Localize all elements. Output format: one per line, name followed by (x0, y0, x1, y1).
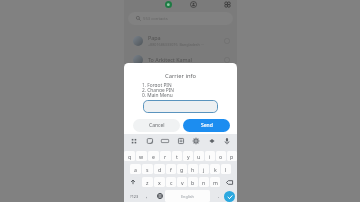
staticText: u (197, 153, 201, 160)
staticText: English (181, 194, 194, 199)
button[interactable]: Send (183, 119, 230, 132)
button[interactable]: Papa (124, 31, 237, 50)
button[interactable]: Apps (130, 137, 138, 145)
button[interactable]: Theme (208, 137, 216, 145)
button[interactable]: x (154, 177, 165, 187)
button[interactable]: g (177, 164, 187, 174)
button[interactable]: To Arkitect Kamal (124, 50, 237, 69)
button[interactable]: h (188, 164, 198, 174)
staticText: v (181, 179, 184, 186)
button[interactable]: r (160, 151, 171, 161)
button[interactable]: Settings (192, 137, 200, 145)
staticText: o (219, 153, 223, 160)
staticText: i (209, 153, 211, 160)
staticText: b (191, 179, 195, 186)
staticText: 0. Main Menu (142, 92, 173, 97)
button[interactable]: Voice input (223, 137, 231, 145)
button[interactable]: Enter (224, 191, 235, 202)
staticText: Send (201, 122, 213, 129)
button[interactable]: p (227, 151, 237, 161)
button[interactable]: 553 contacts (128, 12, 233, 25)
button[interactable]: English (165, 190, 210, 202)
button[interactable]: n (199, 177, 209, 187)
staticText: g (180, 166, 184, 173)
button[interactable]: y (183, 151, 193, 161)
staticText: q (128, 153, 132, 160)
button[interactable]: j (199, 164, 209, 174)
staticText: 553 contacts (143, 16, 168, 22)
staticText: Cancel (149, 122, 165, 129)
button[interactable]: d (154, 164, 165, 174)
staticText: l (225, 166, 227, 173)
button[interactable]: l (221, 164, 231, 174)
button[interactable]: Stickers (146, 137, 154, 145)
button[interactable]: z (142, 177, 153, 187)
button[interactable]: Account (190, 1, 197, 8)
staticText: 2. Change PIN (142, 87, 175, 92)
button[interactable]: GIF (161, 137, 169, 145)
button[interactable]: u (194, 151, 204, 161)
staticText: Papa (148, 34, 161, 41)
button[interactable]: More options (224, 1, 231, 8)
staticText: Carrier info (124, 72, 237, 80)
staticText: k (214, 166, 217, 173)
button[interactable]: Backspace (221, 177, 237, 187)
button[interactable]: Clipboard (177, 137, 185, 145)
staticText: m (213, 179, 218, 186)
button[interactable]: m (210, 177, 220, 187)
staticText: To Arkitect Kamal (148, 56, 192, 63)
button[interactable]: b (188, 177, 198, 187)
button[interactable]: i (205, 151, 215, 161)
staticText: , (146, 193, 148, 200)
button[interactable]: a (130, 164, 141, 174)
button[interactable]: ?123 (127, 190, 141, 202)
staticText: n (202, 179, 206, 186)
button[interactable]: Comma (142, 190, 151, 202)
button[interactable]: WhatsApp (165, 1, 172, 8)
staticText: s (146, 166, 149, 173)
button[interactable] (143, 100, 218, 113)
button[interactable]: Period (214, 190, 223, 202)
staticText: e (152, 153, 155, 160)
staticText: d (158, 166, 162, 173)
staticText: c (170, 179, 173, 186)
staticText: +8801686333076 Bangladesh ··· (148, 42, 204, 47)
button[interactable]: q (124, 151, 135, 161)
button[interactable]: s (142, 164, 153, 174)
staticText: w (139, 153, 144, 160)
staticText: x (158, 179, 161, 186)
staticText: p (230, 153, 234, 160)
staticText: y (187, 153, 190, 160)
staticText: . (218, 193, 220, 200)
staticText: 1. Forgot PIN (142, 82, 172, 87)
staticText: h (191, 166, 195, 173)
button[interactable]: e (148, 151, 159, 161)
button[interactable]: t (172, 151, 182, 161)
button[interactable]: v (177, 177, 187, 187)
button[interactable]: f (166, 164, 176, 174)
button[interactable]: w (136, 151, 147, 161)
button[interactable]: o (216, 151, 226, 161)
staticText: t (176, 153, 178, 160)
staticText: j (203, 166, 205, 173)
button[interactable]: Shift (124, 177, 141, 187)
staticText: ?123 (130, 194, 139, 199)
staticText: f (170, 166, 172, 173)
staticText: r (164, 153, 167, 160)
staticText: a (134, 166, 137, 173)
button[interactable]: Change language (155, 190, 164, 202)
button[interactable]: k (210, 164, 220, 174)
button[interactable]: Cancel (133, 119, 180, 132)
button[interactable]: c (166, 177, 176, 187)
staticText: z (146, 179, 149, 186)
